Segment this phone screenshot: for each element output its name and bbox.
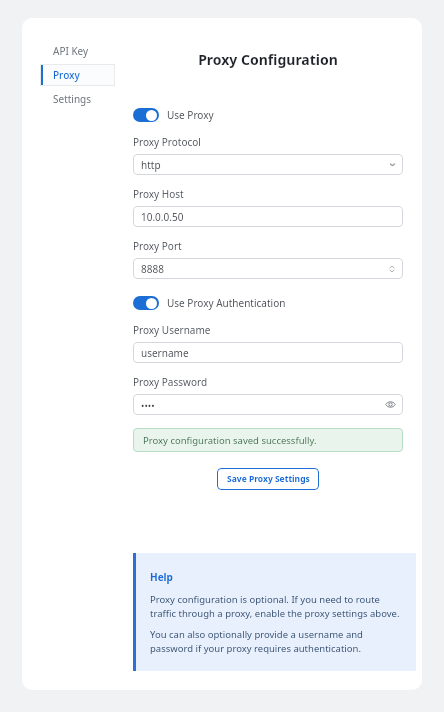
staticText: Proxy configuration is optional. If you … (150, 593, 402, 620)
button[interactable]: •••• (133, 394, 403, 415)
staticText: Proxy Configuration (198, 50, 338, 69)
staticText: Proxy configuration saved successfully. (143, 434, 317, 447)
staticText: 10.0.0.50 (141, 210, 184, 224)
button[interactable]: Settings (40, 88, 115, 110)
button[interactable]: username (133, 342, 403, 363)
button[interactable]: Show password (384, 398, 397, 411)
staticText: Save Proxy Settings (227, 473, 310, 485)
button[interactable]: Proxy (40, 64, 115, 86)
button[interactable]: http (133, 154, 403, 175)
staticText: Help (150, 570, 173, 584)
staticText: •••• (141, 399, 155, 411)
button[interactable]: Use Proxy Authentication (133, 294, 286, 312)
staticText: 8888 (141, 262, 164, 276)
staticText: Proxy Host (133, 187, 184, 201)
staticText: API Key (53, 44, 89, 58)
button[interactable]: 8888 (133, 258, 403, 279)
staticText: Proxy Port (133, 239, 182, 253)
staticText: Proxy Username (133, 323, 211, 337)
staticText: Proxy Password (133, 375, 208, 389)
button[interactable]: Use Proxy (133, 106, 214, 124)
staticText: Proxy (53, 68, 80, 82)
staticText: username (141, 346, 189, 360)
button[interactable]: API Key (40, 40, 115, 62)
staticText: Proxy Protocol (133, 135, 201, 149)
staticText: Use Proxy Authentication (167, 296, 286, 310)
button[interactable]: 10.0.0.50 (133, 206, 403, 227)
staticText: Settings (53, 92, 92, 106)
staticText: http (141, 158, 161, 172)
staticText: Use Proxy (167, 108, 214, 122)
staticText: You can also optionally provide a userna… (150, 628, 402, 655)
button[interactable]: Save Proxy Settings (217, 468, 319, 490)
